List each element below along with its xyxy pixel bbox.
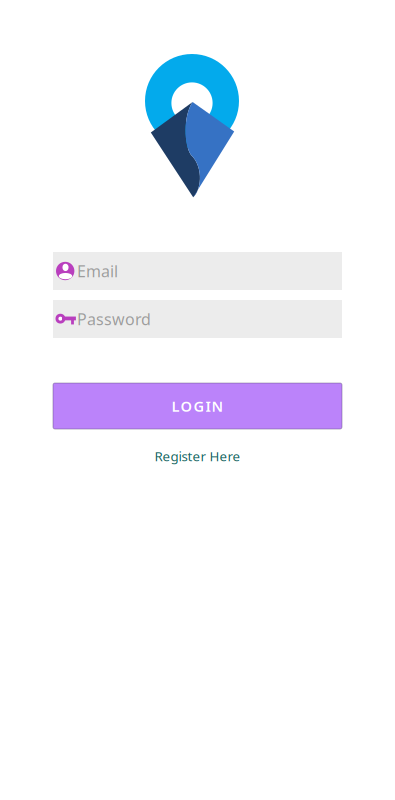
button[interactable]: Register Here: [137, 447, 257, 465]
staticText: LOGIN: [171, 396, 223, 416]
staticText: Register Here: [154, 447, 240, 465]
button[interactable]: LOGIN: [53, 383, 342, 429]
staticText: Password: [77, 308, 151, 330]
button[interactable]: Password: [53, 300, 342, 338]
staticText: Email: [77, 260, 118, 282]
button[interactable]: Email: [53, 252, 342, 290]
